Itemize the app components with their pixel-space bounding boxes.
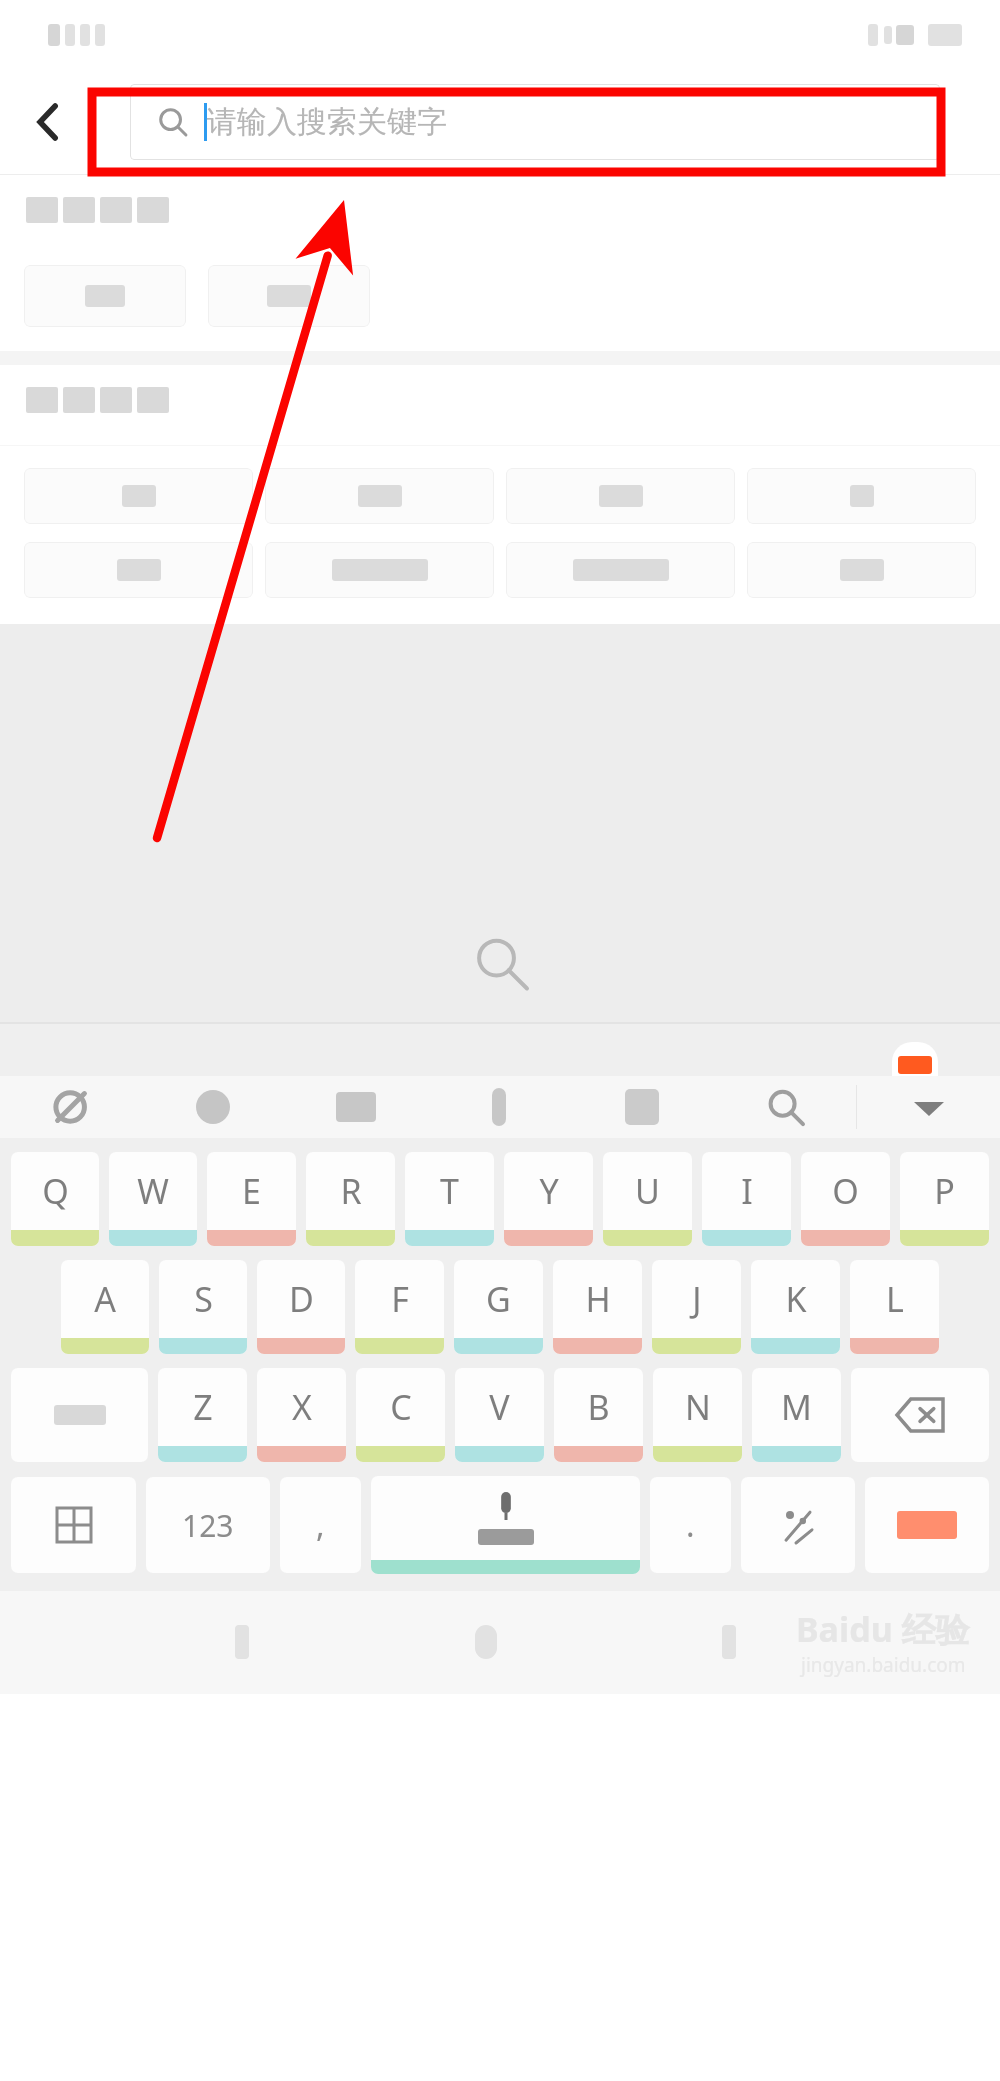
button[interactable]: Voice hint (892, 1042, 938, 1076)
button[interactable] (265, 468, 494, 524)
staticText: V (489, 1384, 510, 1430)
button[interactable]: Keyboard tool 2 (142, 1076, 284, 1138)
button[interactable] (747, 468, 976, 524)
button[interactable]: P (900, 1152, 989, 1246)
button[interactable]: Keyboard tool 1 (0, 1076, 142, 1138)
button[interactable]: M (752, 1368, 841, 1462)
button[interactable]: Keyboard tool 7 (857, 1076, 1000, 1138)
button[interactable]: Space, voice input (371, 1476, 640, 1574)
staticText: D (289, 1276, 314, 1322)
button[interactable]: J (652, 1260, 741, 1354)
button[interactable]: H (553, 1260, 642, 1354)
button[interactable]: E (207, 1152, 296, 1246)
button[interactable]: I (702, 1152, 791, 1246)
staticText: M (781, 1384, 812, 1430)
button[interactable]: Shift (11, 1368, 148, 1462)
button[interactable] (747, 542, 976, 598)
button[interactable]: K (751, 1260, 840, 1354)
staticText: O (832, 1168, 859, 1214)
button[interactable] (506, 468, 735, 524)
button[interactable]: , (280, 1477, 361, 1573)
button[interactable]: C (356, 1368, 445, 1462)
staticText: G (486, 1276, 511, 1322)
staticText: S (194, 1276, 213, 1322)
staticText: R (340, 1168, 362, 1214)
staticText: Q (42, 1168, 69, 1214)
button[interactable]: F (355, 1260, 444, 1354)
button[interactable]: Q (11, 1152, 99, 1246)
staticText: L (886, 1276, 904, 1322)
button[interactable]: T (405, 1152, 494, 1246)
staticText: 123 (182, 1505, 234, 1546)
button[interactable]: 请输入搜索关键字 (130, 84, 940, 160)
button[interactable]: Keyboard tool 4 (427, 1076, 570, 1138)
button[interactable]: U (603, 1152, 692, 1246)
button[interactable]: Search (865, 1477, 989, 1573)
button[interactable]: Keyboard tool 5 (570, 1076, 713, 1138)
button[interactable]: Keyboard tool 6 (713, 1076, 856, 1138)
staticText: P (934, 1168, 955, 1214)
staticText: Z (193, 1384, 213, 1430)
staticText: T (440, 1168, 459, 1214)
button[interactable]: R (306, 1152, 395, 1246)
button[interactable]: D (257, 1260, 345, 1354)
button[interactable] (24, 468, 253, 524)
button[interactable]: L (850, 1260, 939, 1354)
staticText: X (292, 1384, 312, 1430)
staticText: . (686, 1503, 695, 1547)
button[interactable]: G (454, 1260, 543, 1354)
button[interactable]: . (650, 1477, 731, 1573)
staticText: C (390, 1384, 412, 1430)
button[interactable]: O (801, 1152, 890, 1246)
button[interactable]: N (653, 1368, 742, 1462)
button[interactable]: X (257, 1368, 346, 1462)
button[interactable] (208, 265, 370, 327)
staticText: K (785, 1276, 807, 1322)
button[interactable]: Keyboard tool 3 (284, 1076, 427, 1138)
button[interactable]: 123 (146, 1477, 270, 1573)
button[interactable]: V (455, 1368, 544, 1462)
staticText: H (585, 1276, 611, 1322)
button[interactable]: Home (364, 1590, 607, 1694)
button[interactable]: Back (607, 1590, 850, 1694)
staticText: E (242, 1168, 261, 1214)
staticText: A (94, 1276, 116, 1322)
button[interactable]: A (61, 1260, 149, 1354)
button[interactable]: Switch keyboard (11, 1477, 136, 1573)
button[interactable] (24, 542, 253, 598)
staticText: J (692, 1276, 702, 1322)
staticText: N (685, 1384, 711, 1430)
staticText: I (741, 1168, 753, 1214)
button[interactable]: Symbols (741, 1477, 855, 1573)
button[interactable] (24, 265, 186, 327)
staticText: , (316, 1503, 325, 1547)
button[interactable]: B (554, 1368, 643, 1462)
staticText: U (635, 1168, 660, 1214)
button[interactable] (506, 542, 735, 598)
staticText: F (391, 1276, 409, 1322)
staticText: Y (539, 1168, 559, 1214)
button[interactable]: Z (158, 1368, 247, 1462)
staticText: W (137, 1168, 169, 1214)
staticText: jingyan.baidu.com (801, 1652, 966, 1678)
button[interactable]: W (109, 1152, 197, 1246)
staticText: B (587, 1384, 610, 1430)
button[interactable]: Y (504, 1152, 593, 1246)
staticText: Baidu 经验 (796, 1606, 970, 1652)
button[interactable]: S (159, 1260, 247, 1354)
staticText: 请输入搜索关键字 (207, 103, 447, 141)
button[interactable]: Backspace (851, 1368, 989, 1462)
button[interactable] (265, 542, 494, 598)
button[interactable]: Back (0, 70, 96, 174)
